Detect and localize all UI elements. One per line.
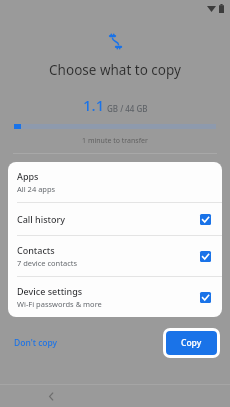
button[interactable]: Call history — [8, 203, 222, 235]
button[interactable]: Don't copy — [10, 333, 62, 353]
staticText: Choose what to copy — [49, 61, 181, 79]
staticText: Contacts — [17, 244, 55, 256]
staticText: 7 device contacts — [17, 258, 78, 268]
staticText: Copy — [181, 337, 202, 349]
staticText: Device settings — [17, 285, 83, 297]
staticText: Apps — [17, 170, 39, 182]
staticText: 1 minute to transfer — [82, 136, 148, 146]
staticText: Call history — [17, 213, 66, 225]
staticText: GB / 44 GB — [107, 103, 148, 114]
button[interactable]: Back — [40, 385, 62, 407]
staticText: Wi-Fi passwords & more — [17, 299, 102, 309]
staticText: Don't copy — [14, 337, 58, 349]
button[interactable]: Apps — [8, 162, 222, 202]
staticText: All 24 apps — [17, 184, 56, 194]
button[interactable]: Device settings — [8, 277, 222, 317]
button[interactable]: Copy — [166, 331, 217, 355]
button[interactable]: Contacts — [8, 236, 222, 276]
staticText: 1.1 — [83, 95, 105, 115]
